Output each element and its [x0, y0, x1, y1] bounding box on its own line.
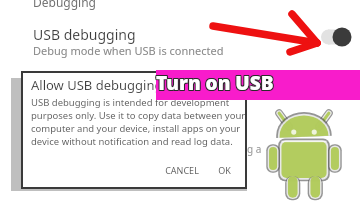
button[interactable]: OK: [211, 161, 237, 179]
staticText: Turn on USB Debugging: [156, 71, 360, 101]
staticText: Turn on USB Debugging: [156, 69, 360, 99]
staticText: Turn on USB Debugging: [157, 69, 360, 99]
button[interactable]: CANCEL: [161, 161, 203, 179]
staticText: Allow USB debugging?: [31, 76, 169, 94]
staticText: Turn on USB Debugging: [156, 70, 360, 100]
staticText: Turn on USB Debugging: [157, 71, 360, 101]
button[interactable]: USB debugging toggle: [318, 26, 354, 48]
staticText: Turn on USB Debugging: [155, 71, 359, 101]
staticText: CANCEL: [165, 164, 199, 176]
staticText: Debugging: [33, 0, 96, 10]
staticText: Turn on USB Debugging: [155, 69, 359, 99]
staticText: Debug mode when USB is connected: [33, 43, 224, 58]
staticText: OK: [218, 164, 231, 176]
staticText: USB debugging: [33, 25, 136, 44]
staticText: g a: [247, 142, 262, 156]
staticText: Turn on USB Debugging: [155, 70, 359, 100]
staticText: USB debugging is intended for developmen…: [31, 96, 246, 148]
button[interactable]: USB debugging: [0, 20, 315, 60]
staticText: Turn on USB Debugging: [157, 70, 360, 100]
